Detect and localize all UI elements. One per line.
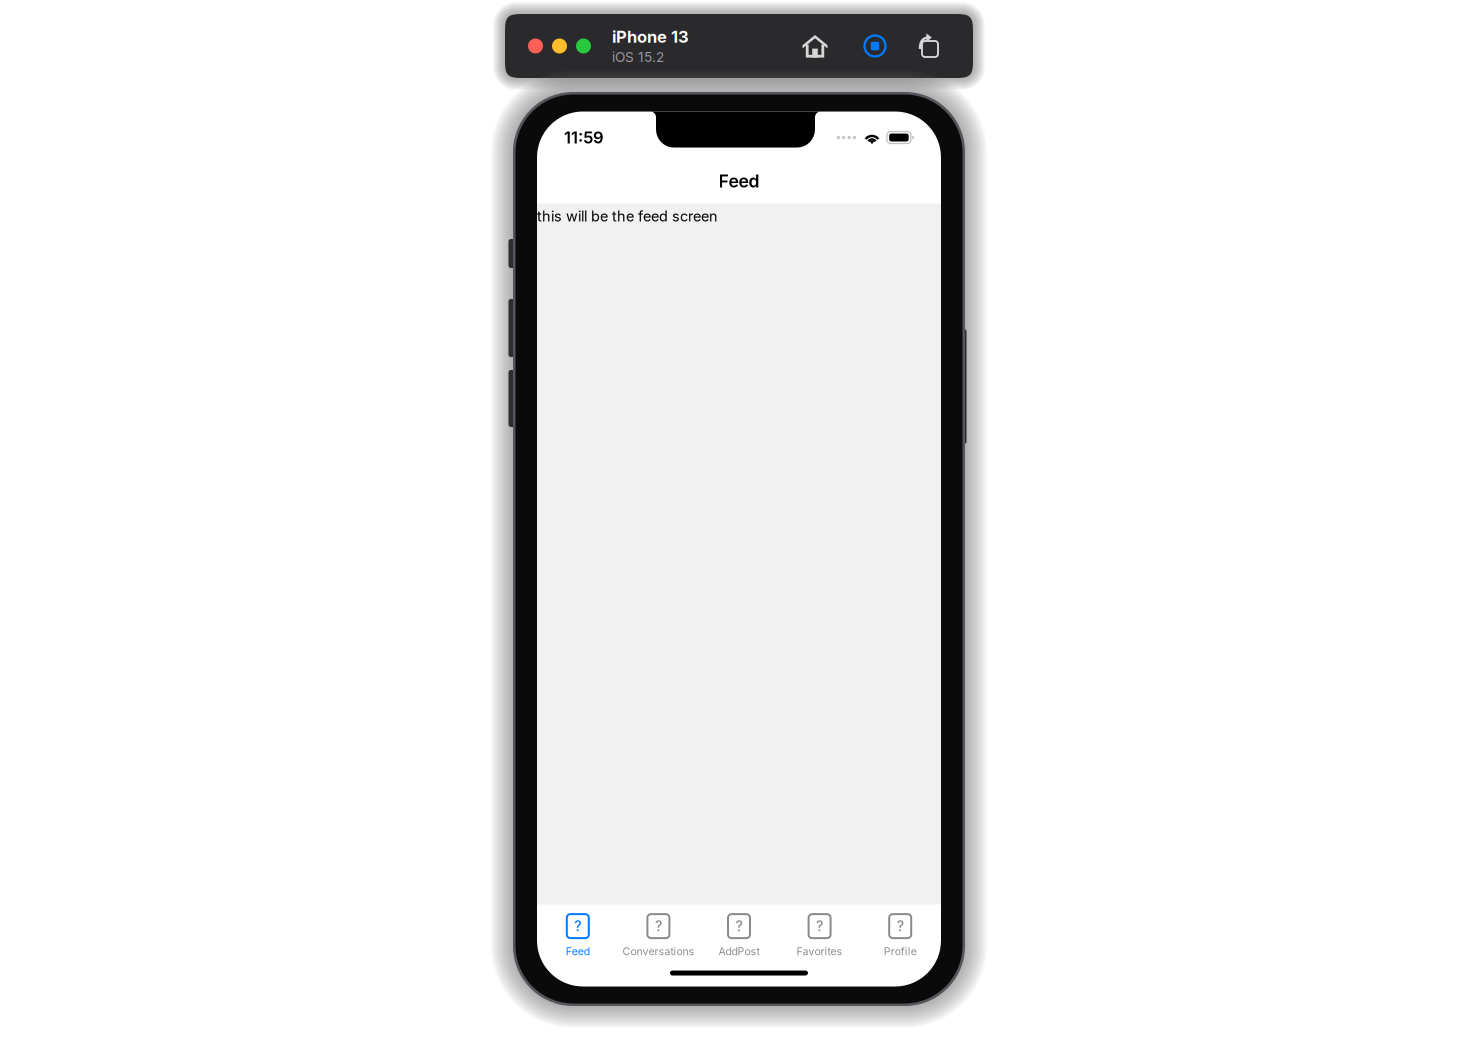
staticText: Favorites <box>797 945 843 958</box>
button[interactable]: ? <box>779 911 860 959</box>
staticText: iOS 15.2 <box>612 49 664 65</box>
button[interactable]: ? <box>618 911 699 959</box>
staticText: this will be the feed screen <box>537 207 718 225</box>
button[interactable]: Record Screen <box>860 31 890 61</box>
staticText: Feed <box>718 170 759 192</box>
button[interactable]: ? <box>860 911 940 959</box>
staticText: 11:59 <box>564 127 604 147</box>
button[interactable]: Home <box>800 31 830 61</box>
staticText: Feed <box>566 945 590 958</box>
staticText: iPhone 13 <box>612 27 689 47</box>
staticText: Profile <box>884 945 917 958</box>
staticText: Conversations <box>622 945 694 958</box>
staticText: ? <box>574 918 581 935</box>
button[interactable]: ? <box>537 911 618 959</box>
button[interactable]: Rotate Device <box>914 31 944 61</box>
staticText: ? <box>655 918 662 935</box>
staticText: ? <box>816 918 823 935</box>
staticText: ? <box>897 918 904 935</box>
button[interactable]: ? <box>699 911 779 959</box>
staticText: AddPost <box>718 945 759 958</box>
staticText: ? <box>735 918 742 935</box>
